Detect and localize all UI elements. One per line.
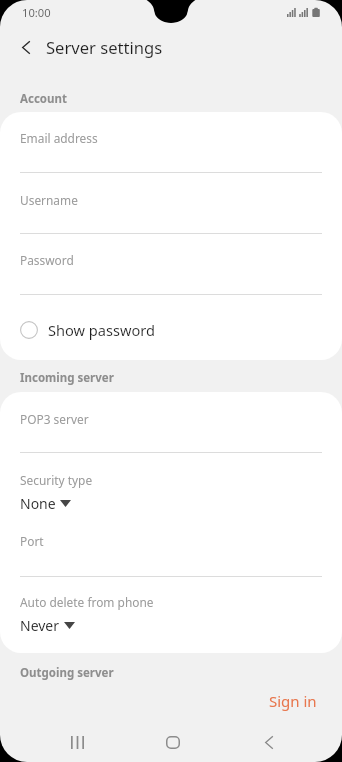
button[interactable]: Recent apps: [53, 721, 101, 762]
button[interactable]: Show password: [0, 318, 342, 341]
staticText: Auto delete from phone: [20, 594, 154, 610]
staticText: Security type: [20, 472, 93, 488]
button[interactable]: Navigate up: [4, 26, 48, 68]
staticText: Username: [20, 192, 78, 208]
staticText: Outgoing server: [20, 665, 114, 681]
staticText: Sign in: [269, 691, 317, 711]
staticText: Never: [20, 616, 60, 635]
staticText: Show password: [48, 320, 155, 340]
staticText: Email address: [20, 130, 98, 146]
staticText: Incoming server: [20, 370, 114, 386]
staticText: Port: [20, 533, 44, 549]
button[interactable]: None: [19, 493, 77, 514]
button[interactable]: Back: [245, 721, 293, 762]
button[interactable]: Sign in: [258, 685, 328, 717]
staticText: Password: [20, 252, 74, 268]
button[interactable]: Never: [19, 615, 81, 636]
button[interactable]: Home: [149, 721, 197, 762]
staticText: 10:00: [22, 5, 51, 20]
staticText: Server settings: [46, 36, 163, 59]
staticText: None: [20, 494, 56, 513]
staticText: Account: [20, 91, 67, 107]
staticText: POP3 server: [20, 411, 89, 427]
